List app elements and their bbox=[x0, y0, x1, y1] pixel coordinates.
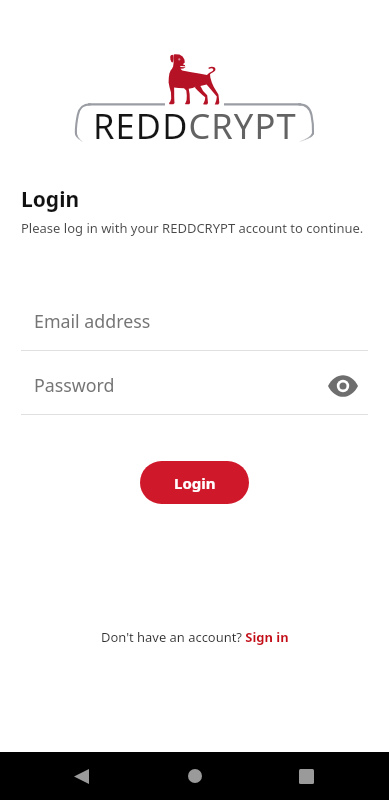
button[interactable]: Password bbox=[21, 372, 368, 414]
button[interactable]: Don't have an account? Sign in bbox=[97, 624, 293, 650]
staticText: Login bbox=[174, 473, 216, 493]
staticText: REDDCRYPT bbox=[93, 102, 297, 149]
staticText: Please log in with your REDDCRYPT accoun… bbox=[21, 219, 364, 237]
staticText: Don't have an account? Sign in bbox=[101, 628, 289, 646]
button[interactable]: Email address bbox=[21, 308, 368, 350]
button[interactable]: Show password bbox=[322, 365, 364, 407]
button[interactable]: Home bbox=[171, 752, 219, 800]
staticText: Email address bbox=[34, 309, 151, 333]
button[interactable]: Back bbox=[57, 752, 105, 800]
staticText: Login bbox=[21, 185, 80, 214]
button[interactable]: Recent apps bbox=[282, 752, 330, 800]
button[interactable]: Login bbox=[140, 461, 249, 504]
staticText: Password bbox=[34, 373, 115, 397]
